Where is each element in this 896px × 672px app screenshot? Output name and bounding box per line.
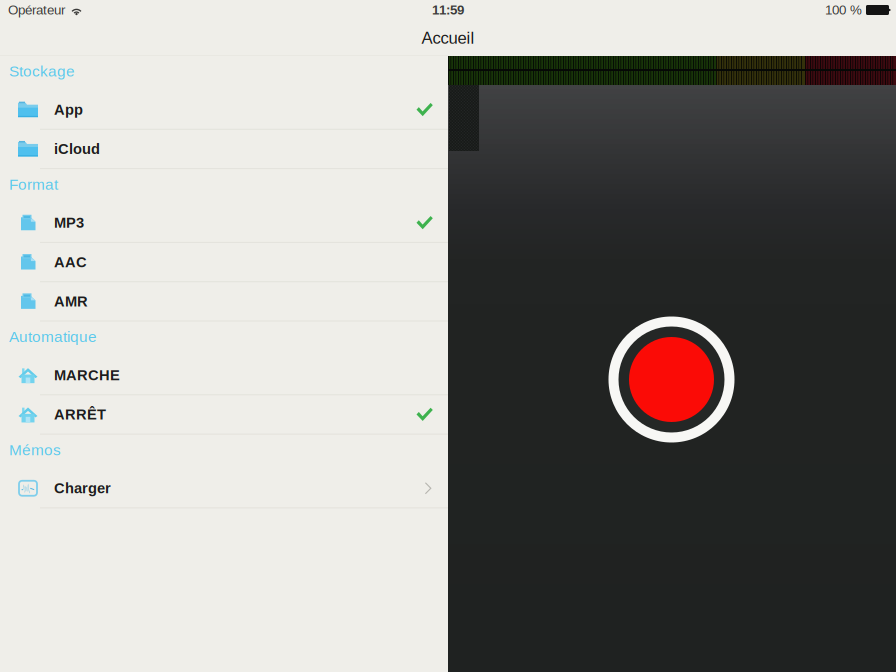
staticText: 100 % [825,3,862,17]
staticText: Opérateur [8,3,65,17]
staticText: ARRÊT [54,406,106,423]
button[interactable]: ARRÊT [0,395,448,435]
button[interactable]: iCloud [0,130,448,169]
button[interactable]: Charger [0,469,448,508]
button[interactable]: MP3 [0,204,448,243]
button[interactable]: Record [608,316,734,442]
staticText: Charger [54,480,111,496]
staticText: iCloud [54,141,100,157]
button[interactable]: AAC [0,243,448,282]
staticText: MARCHE [54,367,120,383]
button[interactable]: AMR [0,282,448,321]
staticText: Format [9,176,58,193]
button[interactable]: MARCHE [0,356,448,395]
staticText: Automatique [9,328,97,345]
button[interactable]: App [0,90,448,130]
staticText: Accueil [421,29,474,47]
staticText: Mémos [9,441,61,458]
staticText: 11:59 [432,3,464,17]
staticText: AAC [54,254,87,270]
staticText: App [54,101,83,118]
staticText: AMR [54,293,88,310]
staticText: Stockage [9,63,75,80]
staticText: MP3 [54,215,84,231]
